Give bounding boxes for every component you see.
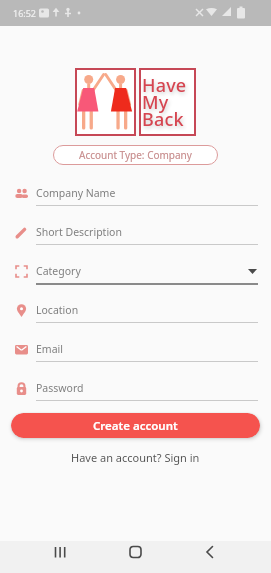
staticText: Email (36, 342, 63, 356)
staticText: Create account (93, 418, 178, 434)
staticText: Company Name (36, 186, 116, 200)
staticText: Short Description (36, 225, 122, 239)
button[interactable] (181, 541, 271, 573)
button[interactable] (91, 541, 181, 573)
staticText: Have My Back (142, 73, 187, 131)
staticText: 16:52 (13, 7, 37, 19)
button[interactable]: Email (0, 337, 271, 376)
button[interactable]: Location (0, 298, 271, 337)
button[interactable]: Have an account? Sign in (0, 450, 271, 465)
staticText: Account Type: Company (79, 148, 192, 162)
staticText: Password (36, 381, 84, 395)
button[interactable]: Company Name (0, 181, 271, 220)
button[interactable] (0, 541, 91, 573)
button[interactable]: Category (0, 259, 271, 298)
button[interactable]: Short Description (0, 220, 271, 259)
staticText: Have an account? Sign in (71, 450, 200, 465)
button[interactable]: Account Type: Company (53, 145, 218, 165)
button[interactable]: Password (0, 376, 271, 401)
button[interactable]: Create account (11, 413, 260, 438)
staticText: Location (36, 303, 79, 317)
staticText: Category (36, 264, 81, 278)
